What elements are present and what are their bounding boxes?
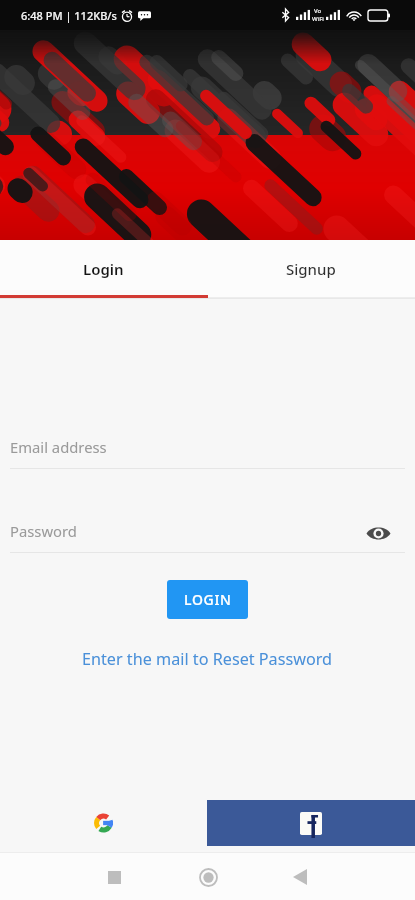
button[interactable]: Recent apps: [92, 855, 136, 899]
button[interactable]: Sign in with Google: [0, 798, 207, 848]
button[interactable]: Show password: [361, 519, 395, 547]
staticText: Email address: [10, 437, 107, 457]
button[interactable]: Login: [0, 240, 207, 298]
staticText: LOGIN: [184, 590, 232, 609]
button[interactable]: Signup: [207, 240, 415, 298]
button[interactable]: Sign in with Facebook: [207, 800, 415, 846]
staticText: Login: [83, 259, 124, 279]
button[interactable]: Enter the mail to Reset Password: [74, 644, 341, 674]
staticText: Password: [10, 521, 77, 541]
staticText: Signup: [286, 259, 336, 279]
staticText: Vo: [314, 7, 322, 15]
button[interactable]: Home: [186, 855, 230, 899]
staticText: WiFi: [312, 15, 324, 23]
button[interactable]: LOGIN: [167, 580, 248, 619]
staticText: 6:48 PM | 112KB/s: [21, 8, 117, 23]
staticText: Enter the mail to Reset Password: [82, 648, 333, 670]
button[interactable]: Back: [278, 855, 322, 899]
